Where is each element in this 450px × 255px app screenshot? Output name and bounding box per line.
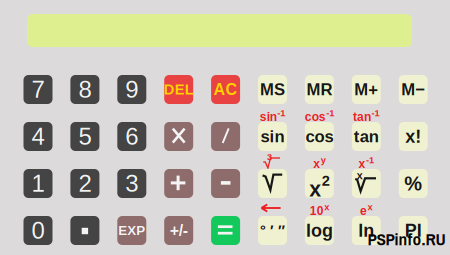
staticText: 4 [31,123,44,150]
staticText: -1 [326,108,334,118]
button[interactable]: PI [399,216,428,245]
button[interactable]: MS [258,75,287,104]
button[interactable]: % [399,169,428,198]
staticText: 2 [322,173,330,189]
button[interactable]: tan [352,122,381,151]
button[interactable]: 2 [70,169,99,198]
staticText: 0 [31,217,44,244]
staticText: DEL [164,81,194,98]
staticText: -1 [277,108,285,118]
button[interactable]: 3 [117,169,146,198]
staticText: % [404,172,422,195]
staticText: ° ′ ″ [260,222,285,239]
staticText: ln [358,220,374,240]
staticText: cos [305,127,333,146]
button[interactable]: 5 [70,122,99,151]
button[interactable]: EXP [117,216,146,245]
staticText: x [357,170,363,181]
staticText: 9 [125,76,138,103]
button[interactable]: Multiply [164,122,193,151]
staticText: cos [305,110,326,123]
button[interactable]: x! [399,122,428,151]
button[interactable]: 7 [23,75,52,104]
staticText: sin [260,127,284,146]
button[interactable]: cos [305,122,334,151]
button[interactable]: Equals [211,216,240,245]
button[interactable]: 4 [23,122,52,151]
staticText: 10 [310,204,324,217]
button[interactable]: AC [211,75,240,104]
button[interactable]: Divide [211,122,240,151]
staticText: x [368,202,373,212]
staticText: 2 [78,170,91,197]
staticText: 8 [78,76,91,103]
staticText: -1 [366,155,374,165]
staticText: PSPinfo.RU [367,227,445,251]
staticText: -1 [372,108,380,118]
staticText: x! [405,126,421,146]
staticText: 3 [125,170,138,197]
button[interactable]: M− [399,75,428,104]
staticText: 5 [78,123,91,150]
staticText: EXP [118,223,145,238]
staticText: x [309,177,321,201]
button[interactable]: Plus [164,169,193,198]
staticText: sin [260,110,277,123]
staticText: MS [260,80,285,99]
button[interactable]: DEL [164,75,193,104]
button[interactable]: M+ [352,75,381,104]
button[interactable]: log [305,216,334,245]
staticText: 6 [125,123,138,150]
staticText: tan [353,110,371,123]
button[interactable]: +/- [164,216,193,245]
staticText: y [321,155,326,165]
button[interactable]: ln [352,216,381,245]
staticText: e [360,204,367,217]
button[interactable]: sin [258,122,287,151]
button[interactable]: 0 [23,216,52,245]
staticText: x [313,157,320,170]
staticText: AC [214,81,238,98]
button[interactable]: Minus [211,169,240,198]
staticText: M+ [354,80,378,99]
button[interactable]: 9 [117,75,146,104]
staticText: MR [306,80,332,99]
staticText: +/- [170,222,188,239]
button[interactable]: x squared [305,169,334,198]
staticText: log [306,220,333,240]
button[interactable]: 1 [23,169,52,198]
staticText: 3 [267,152,272,162]
staticText: 1 [31,170,44,197]
staticText: M− [401,80,425,99]
button[interactable]: MR [305,75,334,104]
staticText: tan [354,127,379,146]
staticText: PI [405,220,422,240]
button[interactable]: Square root [258,169,287,198]
staticText: x [359,157,366,170]
staticText: 7 [31,76,44,103]
staticText: x [324,202,329,212]
button[interactable]: 6 [117,122,146,151]
button[interactable]: Decimal point [70,216,99,245]
button[interactable]: 8 [70,75,99,104]
button[interactable]: x-th root [352,169,381,198]
button[interactable]: Degrees minutes seconds [258,216,287,245]
